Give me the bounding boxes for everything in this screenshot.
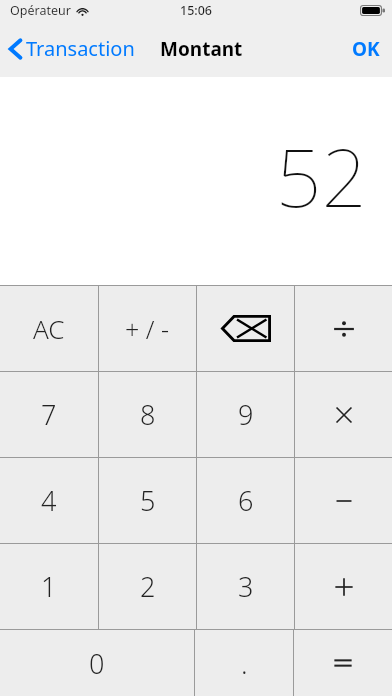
staticText: 15:06 bbox=[180, 2, 213, 19]
staticText: OK bbox=[352, 36, 380, 62]
button[interactable]: AC bbox=[0, 286, 98, 371]
staticText: Montant bbox=[160, 36, 243, 62]
staticText: 5 bbox=[140, 482, 156, 519]
button[interactable]: 0 bbox=[0, 630, 194, 696]
button[interactable]: Plus bbox=[295, 544, 392, 629]
staticText: 7 bbox=[41, 396, 57, 433]
staticText: 4 bbox=[41, 482, 57, 519]
staticText: 0 bbox=[89, 645, 105, 682]
button[interactable]: . bbox=[195, 630, 293, 696]
staticText: . bbox=[241, 645, 248, 682]
button[interactable]: Minus bbox=[295, 458, 392, 543]
button[interactable]: Multiply bbox=[295, 372, 392, 457]
staticText: Opérateur bbox=[10, 2, 71, 19]
staticText: + / - bbox=[125, 312, 170, 346]
button[interactable]: 8 bbox=[99, 372, 196, 457]
button[interactable]: 2 bbox=[99, 544, 196, 629]
staticText: 3 bbox=[238, 568, 254, 605]
staticText: AC bbox=[33, 311, 65, 346]
button[interactable]: 9 bbox=[197, 372, 294, 457]
button[interactable]: 7 bbox=[0, 372, 98, 457]
staticText: 1 bbox=[41, 568, 57, 605]
button[interactable]: 6 bbox=[197, 458, 294, 543]
staticText: 9 bbox=[238, 396, 254, 433]
button[interactable]: 1 bbox=[0, 544, 98, 629]
button[interactable]: Equals bbox=[294, 630, 392, 696]
button[interactable]: Divide bbox=[295, 286, 392, 371]
button[interactable]: 4 bbox=[0, 458, 98, 543]
staticText: 2 bbox=[140, 568, 156, 605]
staticText: 52 bbox=[275, 121, 367, 230]
staticText: 6 bbox=[238, 482, 254, 519]
button[interactable]: 3 bbox=[197, 544, 294, 629]
button[interactable]: Backspace bbox=[197, 286, 294, 371]
button[interactable]: 5 bbox=[99, 458, 196, 543]
staticText: 8 bbox=[140, 396, 156, 433]
button[interactable]: Transaction bbox=[0, 29, 141, 68]
button[interactable]: OK bbox=[340, 28, 392, 70]
staticText: Transaction bbox=[26, 35, 135, 62]
button[interactable]: + / - bbox=[99, 286, 196, 371]
